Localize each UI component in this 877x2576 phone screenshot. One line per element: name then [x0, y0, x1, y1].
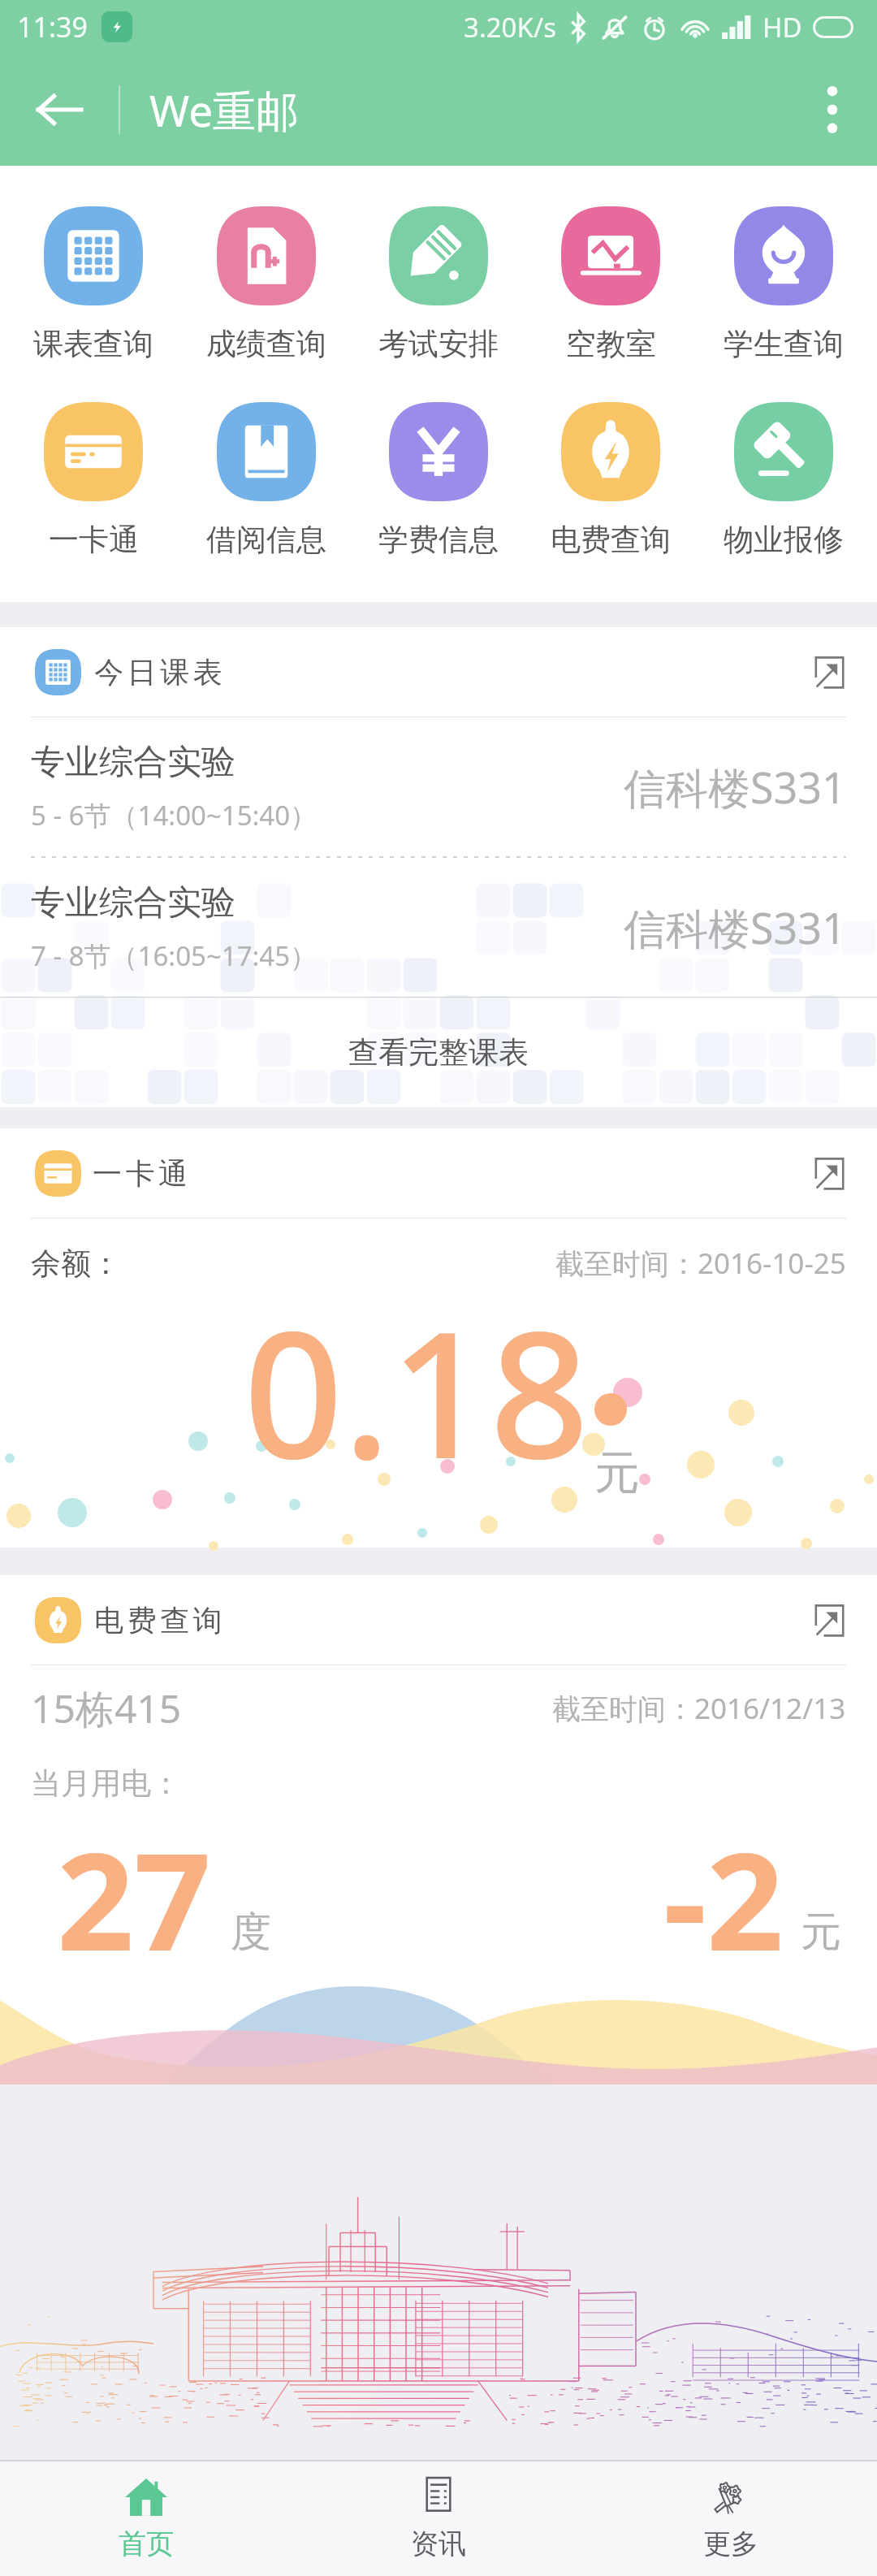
staticText: 更多: [703, 2526, 758, 2561]
staticText: 度: [231, 1907, 271, 1958]
button[interactable]: 查看完整课表: [0, 998, 877, 1107]
staticText: 3.20K/s: [464, 9, 556, 45]
staticText: 课表查询: [33, 325, 153, 363]
staticText: 空教室: [566, 325, 656, 363]
staticText: 电费查询: [551, 521, 671, 559]
button[interactable]: 考试安排: [360, 206, 517, 363]
button[interactable]: 电费查询: [532, 402, 689, 559]
button[interactable]: 资讯: [292, 2461, 585, 2576]
staticText: 查看完整课表: [348, 1033, 529, 1072]
staticText: 7 - 8节（16:05~17:45）: [31, 937, 318, 974]
staticText: 首页: [119, 2526, 174, 2561]
button[interactable]: 专业综合实验: [0, 717, 877, 856]
staticText: 0.18: [244, 1272, 590, 1509]
staticText: 11:39: [17, 8, 88, 45]
staticText: 信科楼S331: [624, 898, 846, 956]
staticText: 专业综合实验: [31, 881, 235, 924]
button[interactable]: 课表查询: [15, 206, 172, 363]
staticText: 学费信息: [378, 521, 499, 559]
staticText: 专业综合实验: [31, 741, 235, 784]
button[interactable]: 更多: [585, 2461, 877, 2576]
staticText: 一卡通: [93, 1155, 192, 1192]
button[interactable]: Back: [0, 54, 119, 166]
staticText: 截至时间：2016/12/13: [552, 1689, 846, 1728]
staticText: 截至时间：2016-10-25: [555, 1244, 846, 1283]
button[interactable]: 首页: [0, 2461, 292, 2576]
button[interactable]: 今日课表: [0, 627, 877, 717]
button[interactable]: 专业综合实验: [0, 858, 877, 997]
staticText: 电费查询: [93, 1602, 224, 1639]
staticText: 一卡通: [49, 521, 139, 559]
staticText: 信科楼S331: [624, 758, 846, 816]
staticText: 资讯: [411, 2526, 466, 2561]
staticText: 成绩查询: [206, 325, 326, 363]
button[interactable]: 借阅信息: [188, 402, 345, 559]
staticText: -2: [663, 1807, 784, 1990]
staticText: 今日课表: [93, 654, 224, 691]
staticText: HD: [763, 9, 802, 45]
staticText: 借阅信息: [206, 521, 326, 559]
staticText: 物业报修: [724, 521, 844, 559]
staticText: 27: [57, 1807, 211, 1990]
staticText: 余额：: [31, 1245, 121, 1283]
staticText: 考试安排: [378, 325, 499, 363]
button[interactable]: More options: [788, 54, 877, 166]
button[interactable]: 一卡通: [15, 402, 172, 559]
button[interactable]: 电费查询: [0, 1575, 877, 1665]
staticText: 5 - 6节（14:00~15:40）: [31, 797, 318, 833]
staticText: 学生查询: [724, 325, 844, 363]
button[interactable]: 学费信息: [360, 402, 517, 559]
staticText: 15栋415: [31, 1682, 182, 1735]
button[interactable]: 空教室: [532, 206, 689, 363]
button[interactable]: 成绩查询: [188, 206, 345, 363]
button[interactable]: 物业报修: [705, 402, 862, 559]
staticText: We重邮: [149, 80, 300, 139]
staticText: 元: [801, 1907, 841, 1958]
button[interactable]: 一卡通: [0, 1128, 877, 1218]
staticText: 当月用电：: [31, 1764, 181, 1803]
button[interactable]: 学生查询: [705, 206, 862, 363]
staticText: 元: [594, 1444, 640, 1502]
